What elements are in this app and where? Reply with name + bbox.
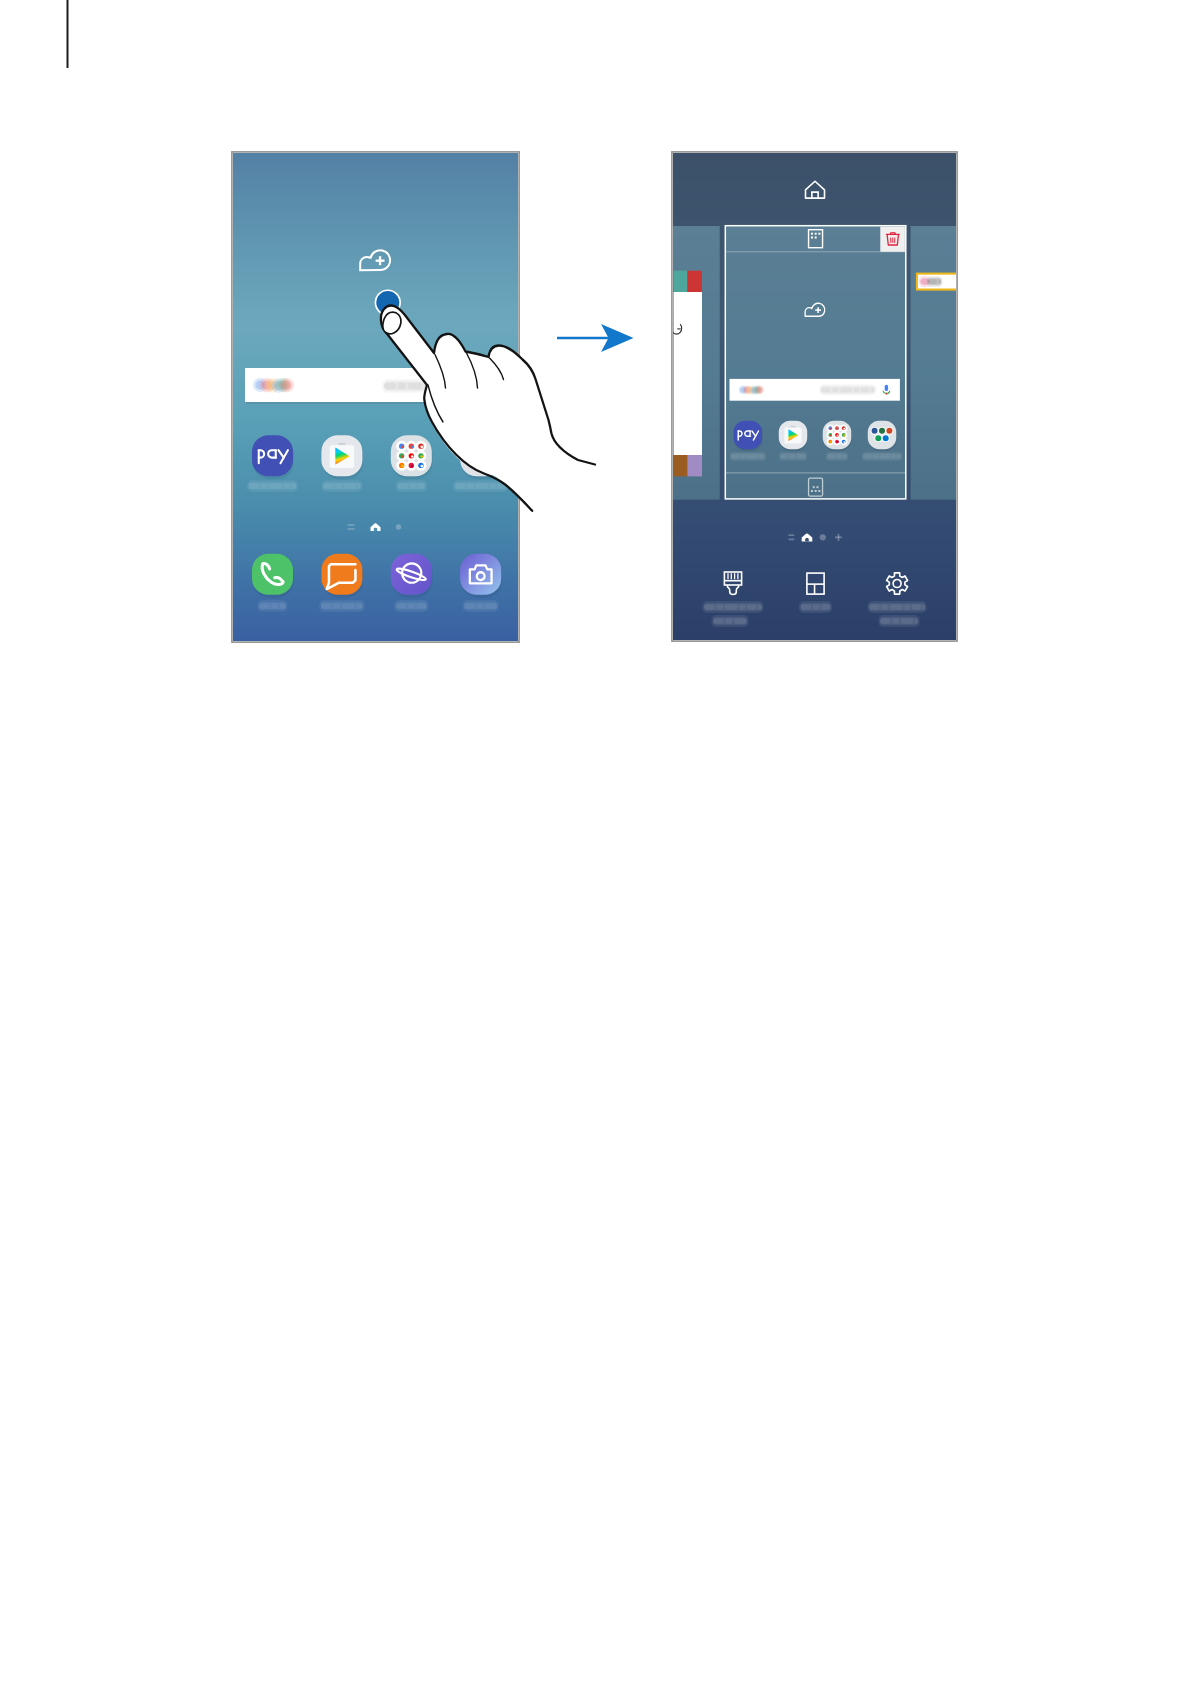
button[interactable]: Apps screen — [800, 475, 830, 499]
button[interactable]: Play Store — [314, 431, 369, 493]
button[interactable]: Remove page — [880, 226, 905, 252]
button[interactable]: Microsoft Apps folder — [452, 431, 507, 493]
button[interactable]: Internet — [383, 550, 438, 612]
button[interactable]: Search with Google — [245, 368, 510, 403]
button[interactable]: Widgets — [783, 560, 851, 635]
button[interactable]: Phone — [245, 550, 300, 612]
button[interactable]: Samsung Pay — [245, 431, 300, 493]
button[interactable]: Apps screen — [798, 228, 832, 252]
button[interactable]: Messages — [314, 550, 369, 612]
button[interactable]: Home screen — [797, 172, 833, 208]
button[interactable]: Camera — [452, 550, 507, 612]
button[interactable]: Google folder — [383, 431, 438, 493]
button[interactable]: Home screen settings — [864, 560, 932, 635]
button[interactable]: Wallpapers and themes — [700, 560, 768, 635]
